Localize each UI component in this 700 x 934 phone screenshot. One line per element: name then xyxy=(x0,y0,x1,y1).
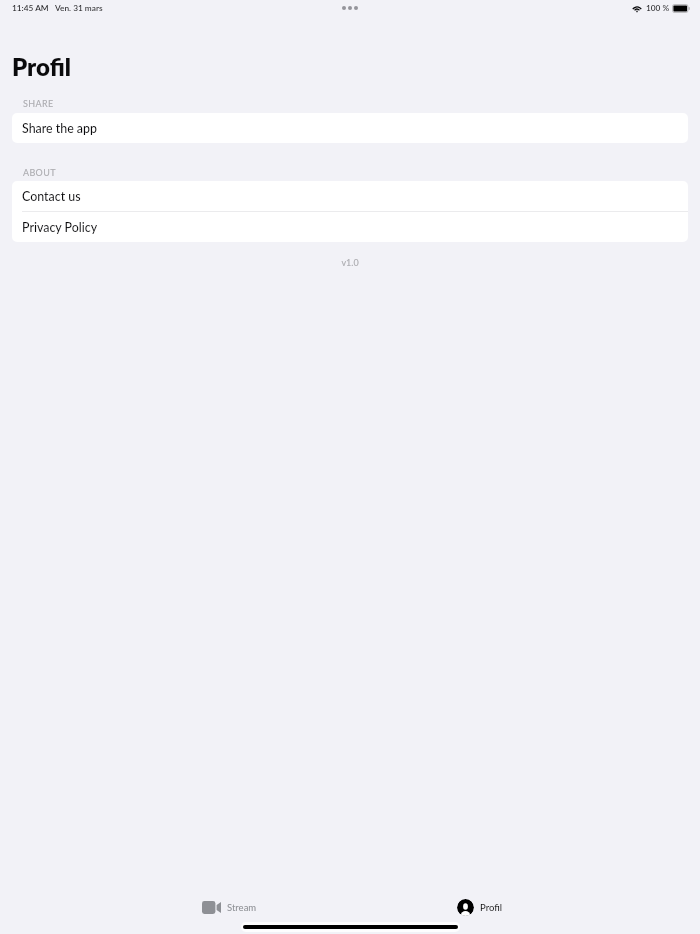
staticText: Privacy Policy xyxy=(22,220,98,235)
staticText: ABOUT xyxy=(23,167,56,178)
staticText: Profil xyxy=(480,902,503,913)
button[interactable]: Profile tab xyxy=(457,894,503,920)
staticText: Ven. 31 mars xyxy=(55,3,103,13)
button[interactable]: Share the app xyxy=(12,113,688,143)
other: Profile tab xyxy=(457,899,474,916)
staticText: Profil xyxy=(12,52,71,81)
staticText: Contact us xyxy=(22,189,81,204)
staticText: Share the app xyxy=(22,121,97,136)
button[interactable]: Stream tab xyxy=(202,894,257,920)
staticText: v1.0 xyxy=(0,257,700,268)
button[interactable]: Privacy Policy xyxy=(12,212,688,242)
staticText: SHARE xyxy=(23,98,54,109)
button[interactable]: Contact us xyxy=(12,181,688,211)
staticText: Stream xyxy=(227,902,257,913)
staticText: 11:45 AM xyxy=(12,3,49,13)
staticText: 100 % xyxy=(646,3,670,13)
other: Stream tab xyxy=(202,901,221,914)
